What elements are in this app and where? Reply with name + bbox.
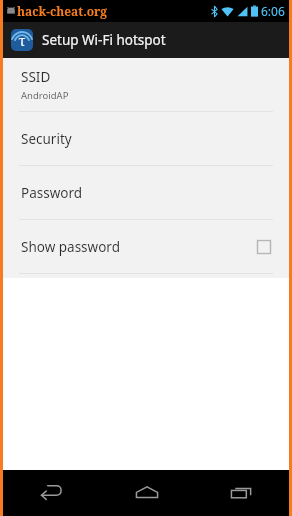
staticText: AndroidAP [21, 89, 69, 102]
button[interactable]: Security [3, 112, 289, 165]
button[interactable]: SSID [3, 58, 289, 111]
button[interactable]: Home [99, 470, 194, 516]
staticText: τ [18, 31, 26, 50]
staticText: Show password [21, 238, 257, 256]
button[interactable]: Show password [3, 220, 289, 273]
staticText: Security [21, 130, 72, 148]
staticText: 6:06 [261, 3, 285, 19]
staticText: hack-cheat.org [17, 3, 108, 19]
button[interactable]: Recent apps [194, 470, 289, 516]
staticText: SSID [21, 68, 51, 86]
button[interactable]: Back [3, 470, 99, 516]
button[interactable]: Password [3, 166, 289, 219]
staticText: Password [21, 184, 83, 202]
staticText: Setup Wi-Fi hotspot [42, 31, 166, 49]
